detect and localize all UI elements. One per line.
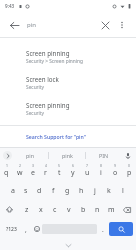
staticText: r xyxy=(44,168,47,178)
button[interactable]: a xyxy=(6,181,19,200)
button[interactable]: z xyxy=(19,200,34,219)
staticText: 6 xyxy=(72,163,74,168)
staticText: 0 xyxy=(128,163,130,168)
button[interactable]: g xyxy=(60,181,74,200)
button[interactable]: 6 xyxy=(66,162,80,181)
staticText: Screen pinning xyxy=(26,101,70,109)
button[interactable]: . xyxy=(97,221,108,237)
staticText: z xyxy=(25,205,29,215)
staticText: u xyxy=(85,168,90,178)
staticText: 7 xyxy=(86,163,88,168)
staticText: Security xyxy=(26,84,45,91)
staticText: e xyxy=(31,168,35,178)
staticText: d xyxy=(37,186,42,196)
staticText: m xyxy=(108,205,115,215)
staticText: p xyxy=(127,168,132,178)
button[interactable]: Search xyxy=(109,222,133,236)
button[interactable]: Emoji xyxy=(31,221,42,237)
staticText: a xyxy=(11,186,15,196)
staticText: 8 xyxy=(100,163,102,168)
button[interactable]: 3 xyxy=(26,162,39,181)
staticText: ?123 xyxy=(6,226,17,233)
button[interactable]: x xyxy=(34,200,48,219)
staticText: pin xyxy=(27,21,97,29)
staticText: , xyxy=(25,225,27,234)
button[interactable]: 2 xyxy=(13,162,26,181)
staticText: v xyxy=(67,205,71,215)
button[interactable]: Search Support for "pin" xyxy=(0,126,136,147)
staticText: Screen lock xyxy=(26,75,59,83)
button[interactable]: Backspace xyxy=(118,200,136,219)
staticText: n xyxy=(95,205,100,215)
staticText: q xyxy=(4,168,9,178)
button[interactable]: Expand suggestions xyxy=(3,151,12,160)
button[interactable]: Screen lock xyxy=(0,70,136,96)
button[interactable]: f xyxy=(46,181,60,200)
staticText: y xyxy=(71,168,75,178)
staticText: 9:43 xyxy=(5,3,15,9)
staticText: b xyxy=(81,205,86,215)
staticText: w xyxy=(17,168,23,178)
staticText: f xyxy=(52,186,55,196)
staticText: . xyxy=(102,225,104,234)
button[interactable]: Screen pinning xyxy=(0,44,136,70)
button[interactable]: pink xyxy=(49,148,85,162)
staticText: o xyxy=(113,168,118,178)
staticText: i xyxy=(100,168,102,178)
staticText: 1 xyxy=(6,163,8,168)
button[interactable]: Voice input xyxy=(122,150,133,161)
staticText: PIN xyxy=(99,152,109,159)
staticText: t xyxy=(58,168,61,178)
button[interactable]: 7 xyxy=(80,162,94,181)
button[interactable]: Clear search xyxy=(97,17,113,33)
button[interactable]: h xyxy=(74,181,88,200)
staticText: s xyxy=(24,186,28,196)
staticText: j xyxy=(94,186,96,196)
staticText: c xyxy=(53,205,57,215)
button[interactable]: m xyxy=(104,200,118,219)
staticText: Screen pinning xyxy=(26,49,70,57)
staticText: pin xyxy=(26,152,35,159)
button[interactable]: 8 xyxy=(94,162,108,181)
staticText: l xyxy=(122,186,124,196)
staticText: 4 xyxy=(45,163,47,168)
button[interactable]: b xyxy=(76,200,90,219)
button[interactable]: j xyxy=(88,181,102,200)
button[interactable]: k xyxy=(102,181,116,200)
button[interactable]: 1 xyxy=(0,162,13,181)
button[interactable]: , xyxy=(20,221,31,237)
staticText: 2 xyxy=(19,163,21,168)
button[interactable]: 0 xyxy=(122,162,136,181)
staticText: Security xyxy=(26,110,45,117)
staticText: pink xyxy=(62,152,73,159)
staticText: 9 xyxy=(114,163,116,168)
button[interactable]: More options xyxy=(114,17,130,33)
button[interactable]: PIN xyxy=(86,148,122,162)
button[interactable]: ?123 xyxy=(2,221,20,237)
staticText: 3 xyxy=(32,163,34,168)
staticText: k xyxy=(107,186,111,196)
staticText: x xyxy=(39,205,43,215)
button[interactable]: pin xyxy=(12,148,48,162)
staticText: Search Support for "pin" xyxy=(26,133,86,140)
button[interactable]: v xyxy=(62,200,76,219)
button[interactable]: 9 xyxy=(108,162,122,181)
button[interactable]: Back xyxy=(6,17,22,33)
button[interactable]: 5 xyxy=(52,162,66,181)
staticText: h xyxy=(79,186,84,196)
button[interactable]: Shift xyxy=(0,200,19,219)
button[interactable]: c xyxy=(48,200,62,219)
button[interactable]: Screen pinning xyxy=(0,96,136,122)
button[interactable]: n xyxy=(90,200,104,219)
button[interactable]: Hide keyboard xyxy=(63,240,73,250)
button[interactable]: d xyxy=(32,181,46,200)
button[interactable]: s xyxy=(19,181,32,200)
staticText: Security > Screen pinning xyxy=(26,58,83,65)
staticText: 5 xyxy=(58,163,60,168)
staticText: g xyxy=(65,186,70,196)
button[interactable]: l xyxy=(116,181,130,200)
button[interactable]: 4 xyxy=(39,162,52,181)
